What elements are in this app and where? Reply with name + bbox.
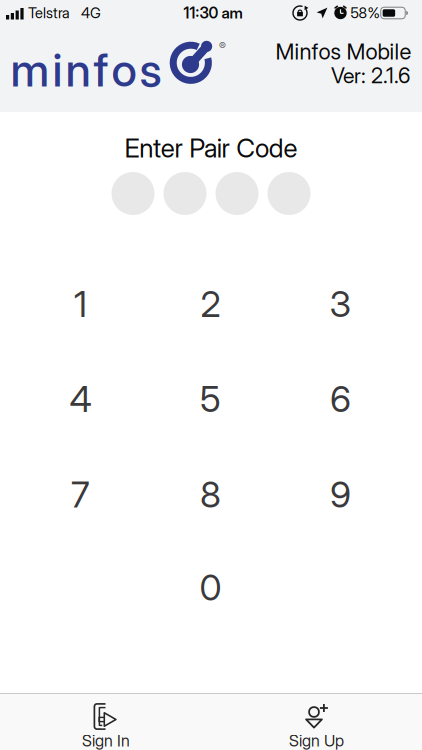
staticText: 1 bbox=[74, 282, 87, 326]
button[interactable]: 7 bbox=[18, 449, 142, 539]
staticText: 2 bbox=[200, 282, 220, 326]
staticText: 4G bbox=[81, 4, 101, 22]
staticText: 0 bbox=[199, 566, 221, 609]
button[interactable]: 8 bbox=[148, 449, 272, 539]
staticText: Sign In bbox=[82, 731, 130, 750]
button[interactable]: 5 bbox=[148, 354, 272, 444]
staticText: 4 bbox=[69, 377, 91, 421]
button[interactable]: 4 bbox=[18, 354, 142, 444]
staticText: 9 bbox=[330, 473, 351, 516]
staticText: Enter Pair Code bbox=[124, 132, 298, 164]
button[interactable]: 9 bbox=[278, 449, 402, 539]
staticText: Minfos Mobile bbox=[275, 38, 411, 65]
staticText: 8 bbox=[200, 473, 221, 516]
staticText: 5 bbox=[200, 377, 221, 421]
staticText: 58% bbox=[350, 4, 379, 22]
staticText: 6 bbox=[330, 377, 351, 421]
button[interactable]: 3 bbox=[278, 259, 402, 349]
staticText: ® bbox=[219, 39, 226, 52]
staticText: Ver: 2.1.6 bbox=[331, 63, 410, 88]
staticText: 7 bbox=[71, 473, 90, 516]
button[interactable]: 0 bbox=[148, 542, 272, 632]
staticText: m i n f o s bbox=[10, 43, 161, 97]
staticText: 3 bbox=[329, 282, 351, 326]
staticText: Telstra bbox=[28, 4, 70, 22]
staticText: 11:30 am bbox=[183, 4, 242, 22]
button[interactable]: 2 bbox=[148, 259, 272, 349]
button[interactable]: 1 bbox=[18, 259, 142, 349]
button[interactable]: Sign Up bbox=[211, 694, 421, 750]
staticText: Sign Up bbox=[289, 731, 344, 750]
button[interactable]: 6 bbox=[278, 354, 402, 444]
button[interactable]: Sign In bbox=[1, 694, 211, 750]
